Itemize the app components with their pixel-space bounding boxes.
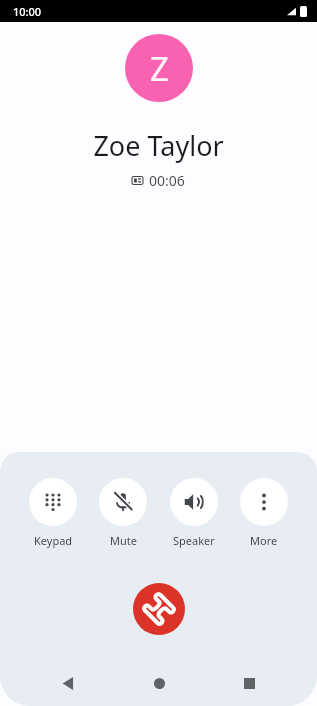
button[interactable]: Recent apps [227,661,271,705]
staticText: 10:00 [13,4,42,19]
button[interactable]: End call [133,583,185,635]
button[interactable]: Mute [97,478,149,548]
staticText: Z [150,46,169,91]
button[interactable]: More [238,478,290,548]
staticText: Speaker [173,533,215,548]
button[interactable]: Speaker [168,478,220,548]
button[interactable]: Home [137,661,181,705]
staticText: More [250,533,278,548]
button[interactable]: Keypad [27,478,79,548]
staticText: Mute [110,533,137,548]
button[interactable]: Back [46,661,90,705]
staticText: Zoe Taylor [93,127,224,164]
staticText: Keypad [34,533,73,548]
staticText: 00:06 [149,171,185,190]
